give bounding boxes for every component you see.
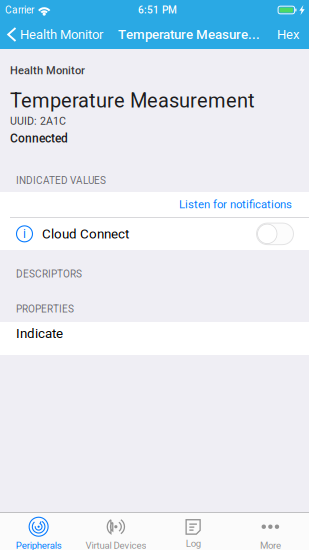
staticText: Indicate [16, 326, 63, 341]
button[interactable]: Log [154, 513, 232, 550]
staticText: PROPERTIES [16, 303, 74, 315]
staticText: Virtual Devices [85, 540, 146, 550]
staticText: 6:51 PM [138, 4, 177, 16]
staticText: Temperature Measurement [10, 89, 255, 112]
button[interactable]: Virtual Devices [77, 513, 154, 550]
staticText: Health Monitor [10, 64, 85, 77]
staticText: Hex [277, 27, 299, 42]
staticText: i [23, 227, 26, 241]
staticText: Log [186, 538, 201, 549]
button[interactable]: More [232, 513, 309, 550]
button[interactable]: Hex [268, 20, 309, 49]
staticText: Peripherals [16, 540, 62, 550]
button[interactable]: Health Monitor [0, 20, 107, 49]
staticText: Temperature Measure... [118, 27, 260, 42]
button[interactable]: Peripherals [0, 513, 77, 550]
staticText: DESCRIPTORS [16, 268, 82, 280]
staticText: UUID: 2A1C [10, 115, 66, 127]
button[interactable]: Listen for notifications [0, 192, 309, 217]
staticText: Health Monitor [20, 27, 103, 42]
staticText: Carrier [5, 4, 34, 16]
staticText: Connected [10, 131, 68, 145]
button[interactable]: i [0, 218, 309, 250]
staticText: Listen for notifications [179, 198, 292, 211]
staticText: INDICATED VALUES [16, 175, 106, 186]
staticText: Cloud Connect [42, 226, 129, 242]
staticText: More [260, 540, 281, 550]
